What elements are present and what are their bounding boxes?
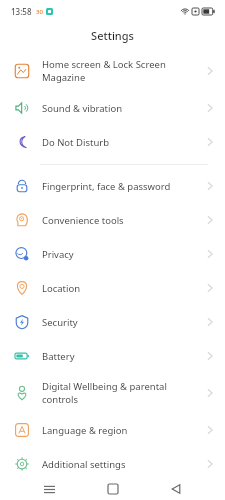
staticText: Privacy <box>42 248 74 261</box>
staticText: Do Not Disturb <box>42 136 110 149</box>
staticText: Magazine <box>42 71 86 84</box>
button[interactable]: Battery <box>0 339 225 373</box>
button[interactable]: Additional settings <box>0 447 225 481</box>
button[interactable]: Security <box>0 305 225 339</box>
button[interactable]: Back <box>162 478 190 500</box>
button[interactable]: Language & region <box>0 413 225 447</box>
staticText: Sound & vibration <box>42 102 123 115</box>
staticText: Settings <box>91 28 134 43</box>
button[interactable]: Recent apps <box>35 478 63 500</box>
staticText: Language & region <box>42 424 128 437</box>
staticText: Fingerprint, face & password <box>42 180 171 193</box>
staticText: Security <box>42 316 78 329</box>
staticText: controls <box>42 393 79 406</box>
button[interactable]: Privacy <box>0 237 225 271</box>
staticText: Digital Wellbeing & parental <box>42 380 167 393</box>
staticText: Location <box>42 282 81 295</box>
staticText: Home screen & Lock Screen <box>42 58 166 71</box>
staticText: 13:58 <box>11 6 32 17</box>
button[interactable]: Fingerprint, face & password <box>0 169 225 203</box>
staticText: Convenience tools <box>42 214 124 227</box>
button[interactable]: Home <box>99 478 127 500</box>
staticText: 30 <box>36 8 43 16</box>
button[interactable]: Home screen & Lock Screen <box>0 51 225 91</box>
staticText: Additional settings <box>42 458 126 471</box>
staticText: Battery <box>42 350 75 363</box>
button[interactable]: Convenience tools <box>0 203 225 237</box>
button[interactable]: Location <box>0 271 225 305</box>
button[interactable]: Sound & vibration <box>0 91 225 125</box>
button[interactable]: Do Not Disturb <box>0 125 225 159</box>
button[interactable]: Digital Wellbeing & parental <box>0 373 225 413</box>
